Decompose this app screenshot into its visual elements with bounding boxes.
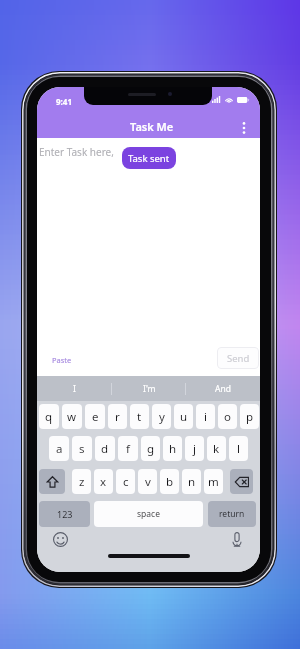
staticText: v [145,474,151,490]
staticText: x [100,474,107,490]
button[interactable]: Backspace [230,469,253,494]
button[interactable]: Paste [52,355,72,365]
button[interactable]: r [108,404,127,429]
button[interactable]: t [130,404,149,429]
button[interactable]: I [37,376,112,401]
staticText: space [137,508,160,520]
staticText: m [208,474,219,490]
button[interactable]: y [152,404,171,429]
button[interactable]: a [49,436,69,461]
button[interactable]: p [240,404,259,429]
button[interactable]: z [72,469,91,494]
staticText: l [237,441,240,457]
button[interactable]: o [218,404,237,429]
staticText: Task Me [130,119,174,134]
button[interactable]: I'm [112,376,186,401]
button[interactable]: n [182,469,201,494]
staticText: p [246,409,254,425]
button[interactable]: And [186,376,260,401]
staticText: q [45,409,53,425]
staticText: z [79,474,85,490]
staticText: j [193,441,196,457]
staticText: f [126,441,130,457]
staticText: b [166,474,174,490]
staticText: t [137,409,142,425]
button[interactable]: u [174,404,193,429]
staticText: s [79,441,85,457]
button[interactable]: s [72,436,92,461]
button[interactable]: h [163,436,182,461]
button[interactable]: More options [233,117,255,139]
staticText: I [73,383,76,395]
staticText: h [169,441,177,457]
button[interactable]: k [207,436,226,461]
staticText: Task sent [128,152,170,165]
button[interactable]: e [85,404,105,429]
button[interactable]: v [138,469,157,494]
button[interactable]: Emoji [52,531,68,547]
staticText: I'm [143,383,156,395]
button[interactable]: Task sent [122,147,176,169]
button[interactable]: c [116,469,135,494]
button[interactable]: x [94,469,113,494]
button[interactable]: q [39,404,59,429]
staticText: c [123,474,129,490]
staticText: w [67,409,77,425]
staticText: 123 [57,508,73,520]
button[interactable]: m [204,469,223,494]
button[interactable]: l [229,436,248,461]
staticText: u [180,409,188,425]
staticText: Enter Task here, [39,145,117,159]
staticText: a [56,441,63,457]
staticText: d [101,441,109,457]
button[interactable]: g [141,436,160,461]
button[interactable]: f [118,436,138,461]
staticText: e [92,409,99,425]
staticText: i [204,409,207,425]
staticText: And [215,383,231,395]
button[interactable]: j [185,436,204,461]
staticText: y [159,409,165,425]
staticText: o [224,409,231,425]
staticText: 9:41 [56,96,72,107]
button[interactable]: space [94,501,203,527]
staticText: n [188,474,196,490]
button[interactable]: Dictation [229,531,245,547]
button[interactable]: d [95,436,115,461]
staticText: r [115,409,120,425]
staticText: k [213,441,220,457]
button[interactable]: w [62,404,82,429]
button[interactable]: 123 [39,501,90,527]
button[interactable]: Send [217,347,259,369]
staticText: g [147,441,155,457]
staticText: return [219,508,245,520]
button[interactable]: i [196,404,215,429]
button[interactable]: Shift [39,469,65,494]
staticText: Send [227,352,250,365]
button[interactable]: return [208,501,256,527]
button[interactable]: b [160,469,179,494]
